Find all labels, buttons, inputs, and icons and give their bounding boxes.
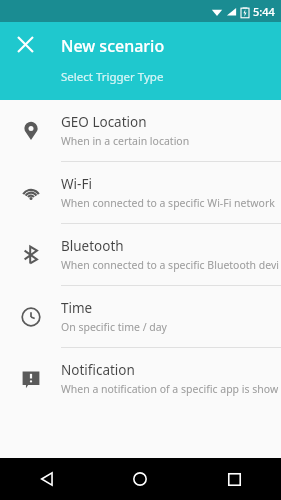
staticText: New scenario: [61, 35, 165, 57]
staticText: 5:44: [253, 4, 275, 19]
button[interactable]: Home: [93, 458, 187, 500]
staticText: When in a certain location: [61, 134, 190, 148]
staticText: When connected to a specific Wi-Fi netwo…: [61, 196, 275, 210]
staticText: Wi-Fi: [61, 175, 92, 193]
staticText: On specific time / day: [61, 320, 167, 334]
button[interactable]: Close: [9, 28, 41, 60]
button[interactable]: Bluetooth: [0, 224, 281, 285]
button[interactable]: Wi-Fi: [0, 162, 281, 223]
staticText: When a notification of a specific app is…: [61, 382, 279, 396]
staticText: Bluetooth: [61, 237, 124, 255]
staticText: When connected to a specific Bluetooth d…: [61, 258, 279, 272]
staticText: Select Trigger Type: [61, 69, 164, 85]
button[interactable]: GEO Location: [0, 100, 281, 161]
button[interactable]: Time: [0, 286, 281, 347]
button[interactable]: Notification: [0, 348, 281, 409]
staticText: Time: [61, 299, 93, 317]
button[interactable]: Recent apps: [187, 458, 281, 500]
button[interactable]: Back: [0, 458, 93, 500]
staticText: Notification: [61, 361, 135, 379]
staticText: GEO Location: [61, 113, 147, 131]
